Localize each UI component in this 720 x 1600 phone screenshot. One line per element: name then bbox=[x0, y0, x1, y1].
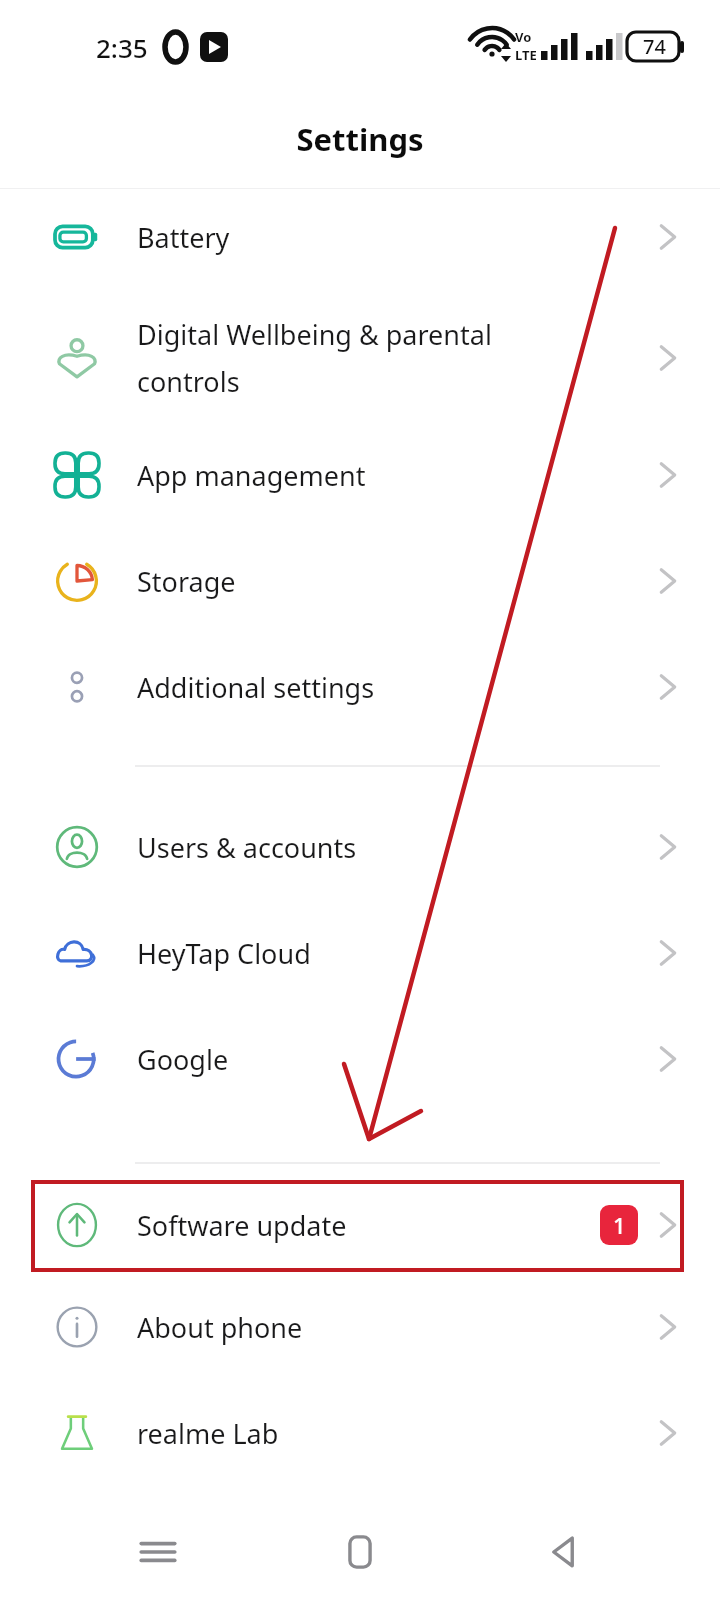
staticText: HeyTap Cloud bbox=[137, 935, 656, 972]
staticText: Digital Wellbeing & parental bbox=[137, 316, 492, 353]
button[interactable]: Storage bbox=[0, 544, 720, 618]
staticText: 74 bbox=[643, 33, 666, 60]
button[interactable]: Recent apps bbox=[113, 1507, 203, 1597]
staticText: Additional settings bbox=[137, 669, 656, 706]
button[interactable]: App management bbox=[0, 438, 720, 512]
staticText: Battery bbox=[137, 219, 656, 256]
staticText: Storage bbox=[137, 563, 656, 600]
button[interactable]: Users & accounts bbox=[0, 810, 720, 884]
button[interactable]: HeyTap Cloud bbox=[0, 916, 720, 990]
button[interactable]: Back bbox=[518, 1507, 608, 1597]
button[interactable]: Digital Wellbeing & parental bbox=[0, 298, 720, 418]
staticText: Google bbox=[137, 1041, 656, 1078]
staticText: 1 bbox=[613, 1210, 626, 1240]
staticText: App management bbox=[137, 457, 656, 494]
button[interactable]: Google bbox=[0, 1022, 720, 1096]
staticText: About phone bbox=[137, 1309, 656, 1346]
button[interactable]: Battery bbox=[0, 200, 720, 274]
button[interactable]: realme Lab bbox=[0, 1396, 720, 1470]
staticText: Vo bbox=[515, 28, 532, 46]
button[interactable]: Additional settings bbox=[0, 650, 720, 724]
button[interactable]: Software update bbox=[0, 1188, 720, 1262]
button[interactable]: About phone bbox=[0, 1290, 720, 1364]
staticText: LTE bbox=[515, 46, 537, 64]
staticText: 2:35 bbox=[96, 30, 148, 65]
staticText: realme Lab bbox=[137, 1415, 656, 1452]
button[interactable]: Home bbox=[315, 1507, 405, 1597]
staticText: Software update bbox=[137, 1207, 600, 1244]
staticText: Users & accounts bbox=[137, 829, 656, 866]
staticText: controls bbox=[137, 363, 240, 400]
staticText: Settings bbox=[296, 118, 424, 160]
